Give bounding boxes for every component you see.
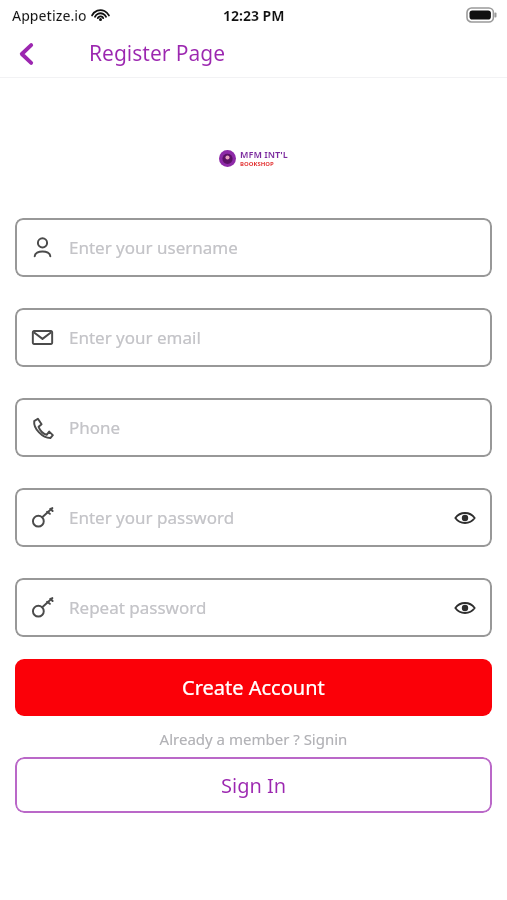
staticText: Register Page — [89, 39, 226, 68]
staticText: BOOKSHOP — [240, 160, 274, 168]
button[interactable]: Back — [4, 31, 50, 77]
staticText: Repeat password — [69, 596, 438, 619]
button[interactable]: Sign In — [15, 757, 492, 813]
button[interactable]: Phone — [15, 398, 492, 457]
staticText: Enter your email — [69, 326, 478, 349]
button[interactable]: Enter your password — [15, 488, 492, 547]
staticText: Create Account — [182, 674, 325, 701]
staticText: Phone — [69, 416, 478, 439]
staticText: Enter your password — [69, 506, 438, 529]
button[interactable]: Already a member ? Signin — [0, 729, 507, 749]
staticText: Appetize.io — [12, 6, 87, 25]
staticText: 12:23 PM — [223, 6, 285, 25]
staticText: Enter your username — [69, 236, 478, 259]
button[interactable]: Show password — [438, 578, 492, 637]
button[interactable]: Enter your username — [15, 218, 492, 277]
button[interactable]: Repeat password — [15, 578, 492, 637]
button[interactable]: Create Account — [15, 659, 492, 716]
button[interactable]: Enter your email — [15, 308, 492, 367]
staticText: MFM INT'L — [240, 148, 288, 160]
staticText: Sign In — [221, 772, 287, 799]
button[interactable]: Show password — [438, 488, 492, 547]
